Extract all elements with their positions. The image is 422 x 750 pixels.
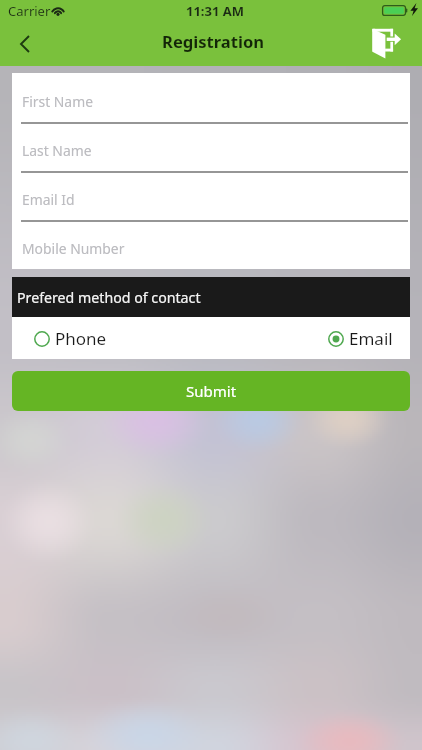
button[interactable]: Back bbox=[0, 26, 48, 66]
button[interactable]: Logout bbox=[370, 26, 422, 66]
button[interactable]: Email bbox=[328, 327, 393, 350]
staticText: 11:31 AM bbox=[186, 2, 245, 20]
button[interactable]: Submit bbox=[12, 371, 410, 411]
staticText: Last Name bbox=[22, 141, 92, 160]
staticText: Email bbox=[349, 327, 393, 350]
staticText: Mobile Number bbox=[22, 239, 125, 258]
staticText: Email Id bbox=[22, 190, 75, 209]
staticText: Carrier bbox=[8, 2, 51, 20]
staticText: First Name bbox=[22, 92, 93, 111]
staticText: Prefered method of contact bbox=[17, 288, 201, 307]
staticText: Registration bbox=[162, 30, 265, 53]
staticText: Phone bbox=[55, 327, 107, 350]
staticText: Submit bbox=[186, 381, 237, 401]
button[interactable]: Phone bbox=[34, 327, 107, 350]
